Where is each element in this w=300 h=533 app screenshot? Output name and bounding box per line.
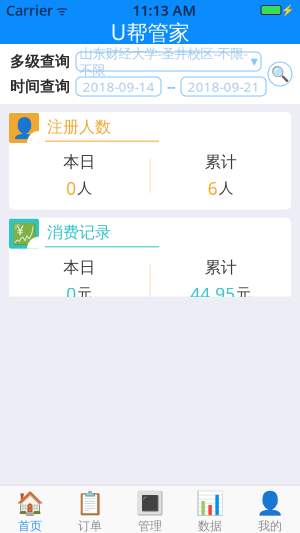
- staticText: 本日: [63, 152, 95, 172]
- staticText: 0: [66, 282, 76, 305]
- button[interactable]: 🔳: [120, 486, 180, 533]
- button[interactable]: 💹: [9, 218, 291, 315]
- staticText: 订单: [78, 519, 102, 533]
- staticText: 元: [77, 285, 92, 303]
- staticText: 31: [203, 494, 223, 517]
- staticText: 我的: [258, 519, 282, 533]
- button[interactable]: 📋: [60, 486, 120, 533]
- staticText: 元: [236, 285, 251, 303]
- staticText: 👤: [11, 117, 36, 139]
- staticText: 🔳: [136, 491, 164, 517]
- staticText: 2018-09-21: [187, 78, 259, 95]
- staticText: ⚡: [281, 4, 294, 16]
- staticText: 44.95: [190, 282, 235, 305]
- button[interactable]: 山东财经大学-圣井校区-不限-不限: [76, 52, 261, 71]
- staticText: 累计: [205, 469, 237, 489]
- button[interactable]: 搜索: [266, 60, 294, 88]
- staticText: ᯤ: [53, 1, 68, 19]
- staticText: 👤: [256, 491, 284, 517]
- button[interactable]: 👤: [240, 486, 300, 533]
- staticText: 多级查询: [10, 52, 70, 70]
- staticText: 6: [208, 177, 218, 200]
- button[interactable]: 👤: [9, 112, 291, 210]
- button[interactable]: 📋: [9, 429, 291, 527]
- staticText: 注册人数: [47, 117, 111, 137]
- button[interactable]: 2018-09-21: [181, 77, 266, 96]
- staticText: 人: [77, 179, 92, 197]
- staticText: 山东财经大学-圣井校区-不限-不限: [79, 44, 247, 79]
- staticText: 本日: [63, 258, 95, 277]
- staticText: 🔍: [271, 66, 289, 82]
- staticText: Carrier: [6, 0, 53, 20]
- staticText: 数据: [198, 519, 222, 533]
- button[interactable]: 2018-09-14: [76, 77, 161, 96]
- button[interactable]: 🏠: [0, 486, 60, 533]
- staticText: 0: [66, 177, 76, 200]
- staticText: ▼: [250, 56, 257, 67]
- button[interactable]: 📊: [180, 486, 240, 533]
- staticText: 本日: [63, 469, 95, 489]
- staticText: 累计: [205, 152, 237, 172]
- staticText: 时间查询: [10, 77, 70, 95]
- staticText: 11:13 AM: [132, 0, 196, 20]
- staticText: 累计: [205, 258, 237, 277]
- staticText: 2018-09-14: [82, 78, 154, 95]
- staticText: 📋: [76, 491, 104, 517]
- staticText: 管理: [138, 519, 162, 533]
- staticText: 首页: [18, 519, 42, 533]
- staticText: U帮管家: [110, 18, 189, 46]
- staticText: 📊: [196, 491, 224, 517]
- staticText: 人: [219, 179, 234, 197]
- staticText: 单: [77, 496, 92, 514]
- staticText: --: [167, 78, 175, 95]
- staticText: 消费记录: [47, 223, 111, 242]
- staticText: 💹: [11, 222, 36, 245]
- staticText: 🏠: [16, 491, 44, 517]
